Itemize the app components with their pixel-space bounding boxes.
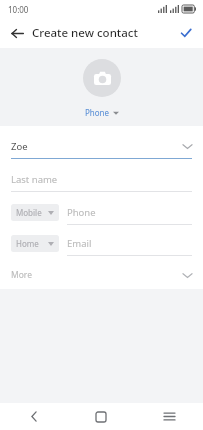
staticText: Zoe: [11, 140, 28, 153]
button[interactable]: Home: [11, 235, 59, 252]
staticText: Phone: [85, 107, 110, 118]
staticText: Create new contact: [32, 25, 138, 41]
button[interactable]: Phone: [67, 204, 192, 225]
staticText: Phone: [67, 206, 96, 219]
button[interactable]: Last name: [11, 170, 192, 192]
button[interactable]: Recent apps: [135, 403, 203, 430]
button[interactable]: Add photo: [83, 59, 121, 97]
button[interactable]: Zoe: [11, 137, 192, 159]
button[interactable]: Mobile: [11, 204, 59, 221]
staticText: More: [11, 269, 32, 281]
button[interactable]: Email: [67, 235, 192, 256]
staticText: 10:00: [8, 4, 29, 15]
staticText: Email: [67, 237, 92, 250]
button[interactable]: Save contact: [175, 22, 197, 44]
staticText: Home: [16, 238, 39, 249]
button[interactable]: Phone: [83, 106, 121, 119]
button[interactable]: Back: [0, 403, 67, 430]
button[interactable]: More: [11, 265, 192, 285]
staticText: Mobile: [16, 207, 42, 218]
staticText: Last name: [11, 173, 58, 186]
button[interactable]: Home: [67, 403, 135, 430]
button[interactable]: Back: [6, 22, 28, 44]
